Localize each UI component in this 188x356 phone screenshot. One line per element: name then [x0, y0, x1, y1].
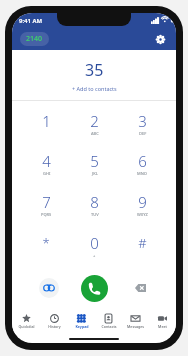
button[interactable]: 3: [118, 103, 166, 143]
staticText: Quickdial: [18, 324, 35, 329]
staticText: 6: [138, 151, 147, 171]
staticText: Messages: [127, 324, 144, 329]
button[interactable]: Meet: [149, 308, 176, 334]
staticText: Keypad: [75, 324, 89, 329]
button[interactable]: 0: [70, 225, 118, 266]
staticText: TUV: [91, 212, 99, 217]
staticText: GHI: [43, 171, 51, 176]
staticText: 5: [90, 151, 99, 171]
staticText: 8: [90, 192, 99, 212]
staticText: PQRS: [41, 212, 52, 217]
staticText: 1: [42, 111, 51, 131]
button[interactable]: 9: [118, 184, 166, 225]
staticText: 2140: [26, 34, 43, 44]
button[interactable]: Contacts: [95, 308, 122, 334]
staticText: History: [48, 324, 61, 329]
button[interactable]: 6: [118, 143, 166, 184]
staticText: 9:41 AM: [19, 17, 43, 25]
staticText: DEF: [139, 131, 147, 136]
button[interactable]: 7: [22, 184, 70, 225]
staticText: 35: [85, 59, 104, 81]
button[interactable]: Messages: [122, 308, 149, 334]
button[interactable]: History: [40, 308, 68, 334]
button[interactable]: Call: [81, 275, 108, 302]
staticText: Contacts: [101, 324, 117, 329]
button[interactable]: 8: [70, 184, 118, 225]
button[interactable]: 5: [70, 143, 118, 184]
staticText: 9: [138, 192, 147, 212]
staticText: *: [42, 234, 50, 252]
staticText: 3: [138, 111, 147, 131]
staticText: 7: [42, 192, 51, 212]
button[interactable]: + Add to contacts: [68, 84, 121, 93]
staticText: +: [93, 253, 96, 258]
staticText: JKL: [92, 171, 98, 176]
button[interactable]: Voicemail: [39, 278, 59, 298]
button[interactable]: #: [118, 225, 166, 266]
button[interactable]: Keypad: [68, 308, 95, 334]
staticText: Meet: [158, 324, 167, 329]
button[interactable]: 2140: [20, 32, 49, 46]
staticText: 0: [90, 233, 99, 253]
staticText: + Add to contacts: [72, 85, 117, 92]
staticText: WXYZ: [137, 212, 148, 217]
staticText: MNO: [137, 171, 147, 176]
button[interactable]: Quickdial: [12, 308, 40, 334]
staticText: 4: [42, 151, 51, 171]
staticText: 2: [90, 111, 99, 131]
staticText: ABC: [91, 131, 99, 136]
button[interactable]: 2: [70, 103, 118, 143]
button[interactable]: Settings: [152, 31, 168, 47]
button[interactable]: 1: [22, 103, 70, 143]
button[interactable]: 4: [22, 143, 70, 184]
button[interactable]: *: [22, 225, 70, 266]
staticText: #: [138, 234, 147, 252]
button[interactable]: Backspace: [131, 279, 149, 297]
